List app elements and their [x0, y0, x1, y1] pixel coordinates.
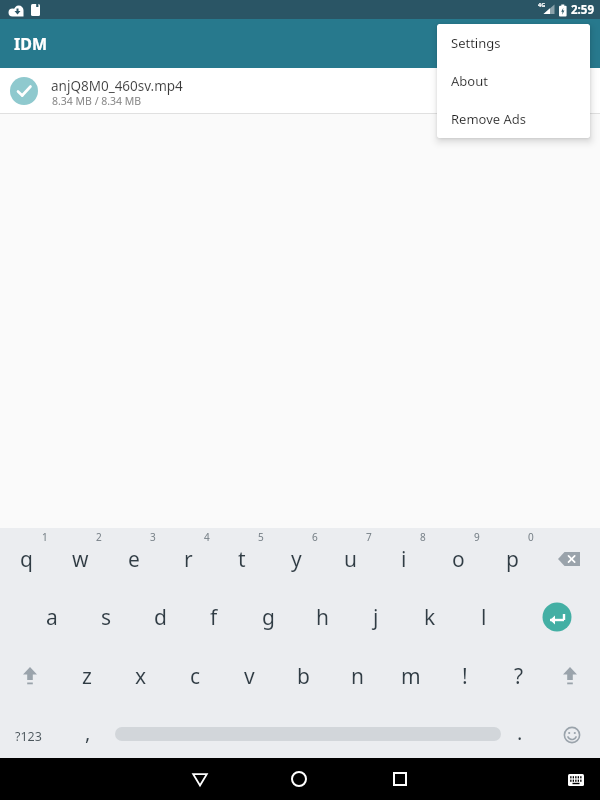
staticText: q [20, 545, 33, 574]
staticText: IDM [14, 33, 48, 55]
staticText: g [262, 603, 275, 632]
staticText: 6 [312, 530, 318, 544]
button[interactable] [545, 651, 595, 701]
button[interactable]: i [378, 534, 430, 584]
staticText: m [401, 662, 421, 691]
staticText: ? [514, 662, 524, 691]
button[interactable]: y [270, 534, 322, 584]
button[interactable]: ?123 [1, 712, 55, 760]
button[interactable]: q [0, 534, 52, 584]
staticText: u [344, 545, 357, 574]
button[interactable]: p [486, 534, 538, 584]
button[interactable]: w [54, 534, 106, 584]
button[interactable] [180, 760, 220, 800]
button[interactable]: u [324, 534, 376, 584]
button[interactable] [279, 760, 319, 800]
button[interactable]: Settings [437, 24, 590, 62]
button[interactable]: z [61, 651, 113, 701]
button[interactable]: o [432, 534, 484, 584]
staticText: 4 [204, 530, 210, 544]
staticText: Remove Ads [451, 110, 527, 128]
button[interactable]: . [495, 708, 545, 756]
staticText: e [128, 545, 140, 574]
staticText: b [297, 662, 310, 691]
button[interactable] [113, 712, 503, 758]
button[interactable]: ! [439, 651, 491, 701]
staticText: x [135, 662, 147, 691]
staticText: 7 [366, 530, 372, 544]
button[interactable] [558, 762, 594, 798]
button[interactable]: g [242, 592, 294, 642]
staticText: z [82, 662, 92, 691]
staticText: anjQ8M0_460sv.mp4 [51, 77, 183, 95]
button[interactable]: d [134, 592, 186, 642]
button[interactable]: m [385, 651, 437, 701]
button[interactable]: l [458, 592, 510, 642]
staticText: , [85, 719, 91, 746]
staticText: . [517, 719, 523, 746]
staticText: v [244, 662, 255, 691]
button[interactable] [547, 711, 597, 759]
staticText: h [316, 603, 329, 632]
staticText: a [46, 603, 58, 632]
button[interactable]: About [437, 62, 590, 100]
staticText: 8 [420, 530, 426, 544]
staticText: ?123 [15, 728, 42, 745]
staticText: p [506, 545, 519, 574]
button[interactable] [545, 534, 595, 584]
staticText: s [101, 603, 112, 632]
button[interactable]: n [331, 651, 383, 701]
staticText: r [184, 545, 193, 574]
staticText: t [238, 545, 246, 574]
staticText: 4G [538, 1, 546, 8]
staticText: 1 [42, 530, 48, 544]
button[interactable]: a [26, 592, 78, 642]
staticText: 2:59 [571, 2, 594, 18]
staticText: o [452, 545, 465, 574]
button[interactable]: e [108, 534, 160, 584]
button[interactable]: s [80, 592, 132, 642]
button[interactable] [532, 592, 582, 642]
button[interactable]: v [223, 651, 275, 701]
button[interactable]: k [404, 592, 456, 642]
button[interactable]: b [277, 651, 329, 701]
staticText: d [154, 603, 167, 632]
staticText: About [451, 72, 488, 90]
button[interactable]: c [169, 651, 221, 701]
button[interactable]: j [350, 592, 402, 642]
staticText: n [351, 662, 364, 691]
staticText: f [210, 603, 218, 632]
button[interactable]: r [162, 534, 214, 584]
staticText: 2 [96, 530, 102, 544]
staticText: ! [462, 662, 468, 691]
button[interactable]: f [188, 592, 240, 642]
staticText: 8.34 MB / 8.34 MB [52, 94, 142, 108]
staticText: 0 [528, 530, 534, 544]
button[interactable] [5, 651, 55, 701]
staticText: l [481, 603, 487, 632]
button[interactable]: , [63, 708, 113, 756]
staticText: 5 [258, 530, 264, 544]
button[interactable] [380, 760, 420, 800]
button[interactable]: t [216, 534, 268, 584]
staticText: 3 [150, 530, 156, 544]
staticText: Settings [451, 34, 501, 52]
staticText: c [190, 662, 201, 691]
staticText: j [373, 603, 379, 632]
button[interactable]: x [115, 651, 167, 701]
staticText: 9 [474, 530, 480, 544]
staticText: w [72, 545, 89, 574]
button[interactable]: h [296, 592, 348, 642]
staticText: y [291, 545, 302, 574]
button[interactable]: Remove Ads [437, 100, 590, 138]
button[interactable]: ? [493, 651, 545, 701]
staticText: k [424, 603, 436, 632]
button[interactable]: anjQ8M0_460sv.mp4 [0, 68, 600, 113]
staticText: i [401, 545, 407, 574]
